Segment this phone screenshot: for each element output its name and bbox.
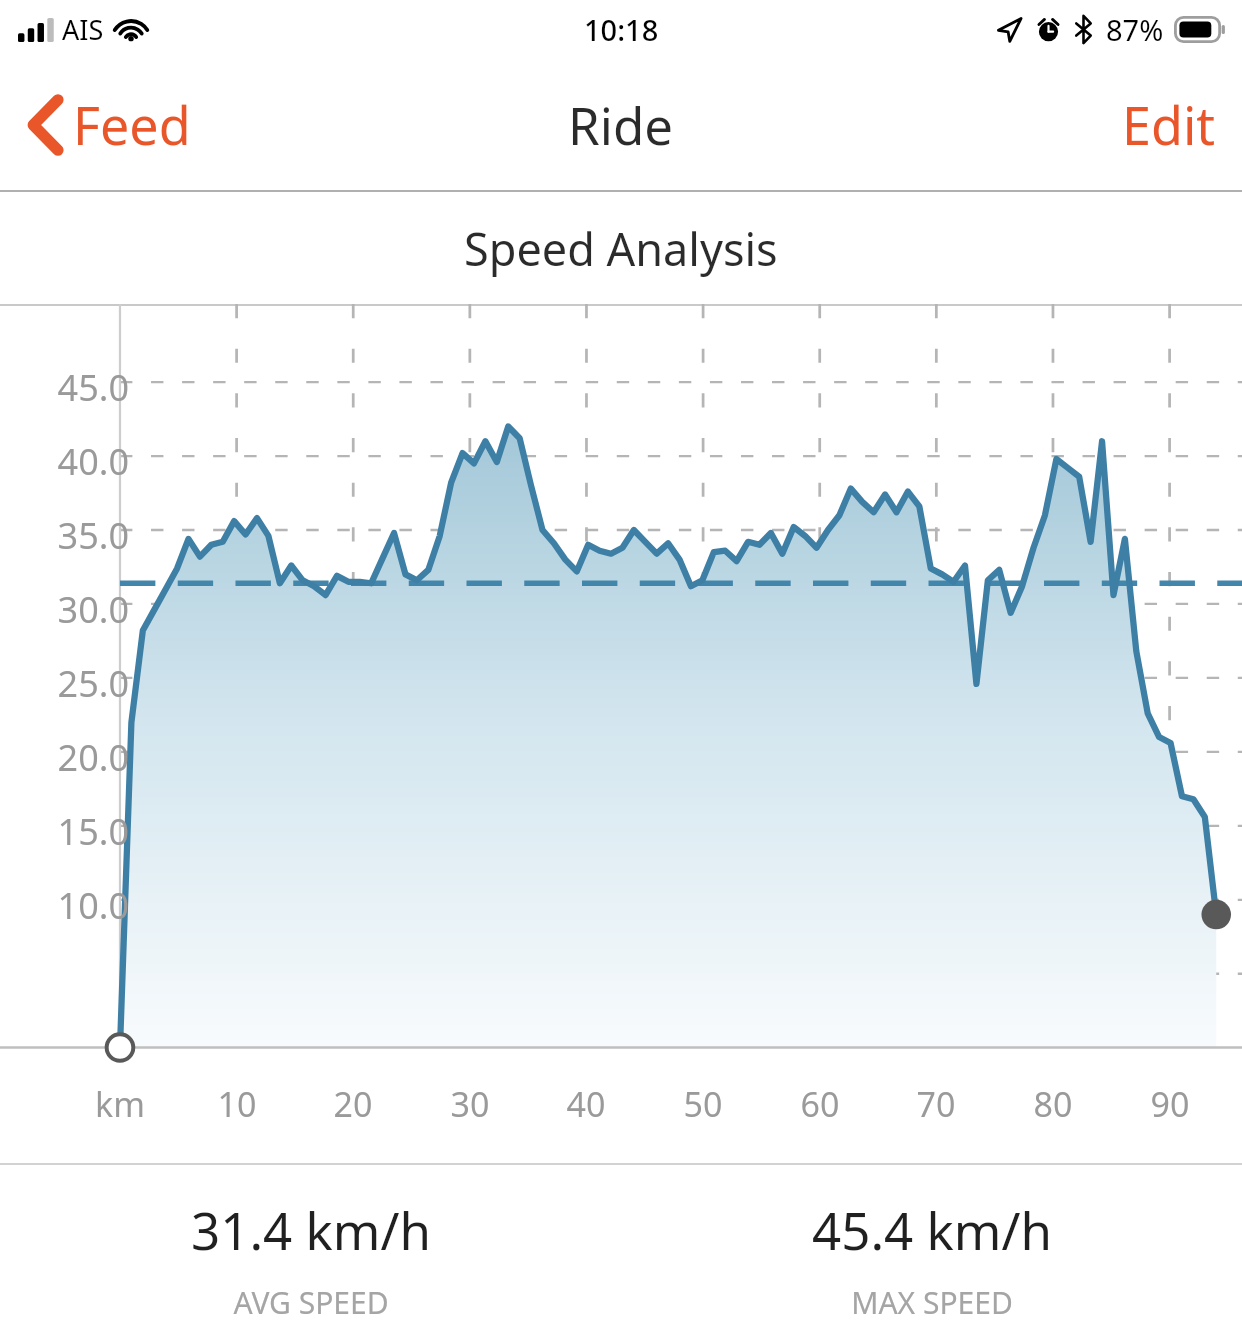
staticText: 31.4 km/h (191, 1195, 431, 1264)
staticText: 30 (420, 1081, 520, 1127)
staticText: 20.0 (24, 733, 129, 782)
button[interactable]: Edit (1096, 71, 1242, 178)
staticText: Speed Analysis (464, 218, 778, 279)
staticText: 10.0 (24, 881, 129, 930)
staticText: 10 (187, 1081, 287, 1127)
staticText: Ride (568, 90, 674, 159)
staticText: 87% (1106, 10, 1164, 49)
staticText: AIS (62, 11, 104, 48)
staticText: 30.0 (24, 585, 129, 634)
staticText: 45.4 km/h (812, 1195, 1052, 1264)
staticText: 10:18 (584, 10, 659, 49)
staticText: 20 (303, 1081, 403, 1127)
button[interactable]: 31.4 km/h (0, 1165, 621, 1323)
staticText: 35.0 (24, 511, 129, 560)
button[interactable]: 45.4 km/h (621, 1165, 1242, 1323)
staticText: 40.0 (24, 437, 129, 486)
staticText: 50 (653, 1081, 753, 1127)
staticText: 40 (536, 1081, 636, 1127)
staticText: MAX SPEED (851, 1282, 1013, 1323)
staticText: Feed (73, 89, 191, 160)
staticText: AVG SPEED (233, 1282, 389, 1323)
staticText: Edit (1122, 89, 1216, 160)
staticText: 80 (1003, 1081, 1103, 1127)
staticText: 45.0 (24, 363, 129, 412)
staticText: 90 (1120, 1081, 1220, 1127)
staticText: 60 (770, 1081, 870, 1127)
staticText: 15.0 (24, 807, 129, 856)
staticText: km (70, 1081, 170, 1127)
button[interactable]: Feed (0, 73, 211, 176)
staticText: 25.0 (24, 659, 129, 708)
staticText: 70 (886, 1081, 986, 1127)
